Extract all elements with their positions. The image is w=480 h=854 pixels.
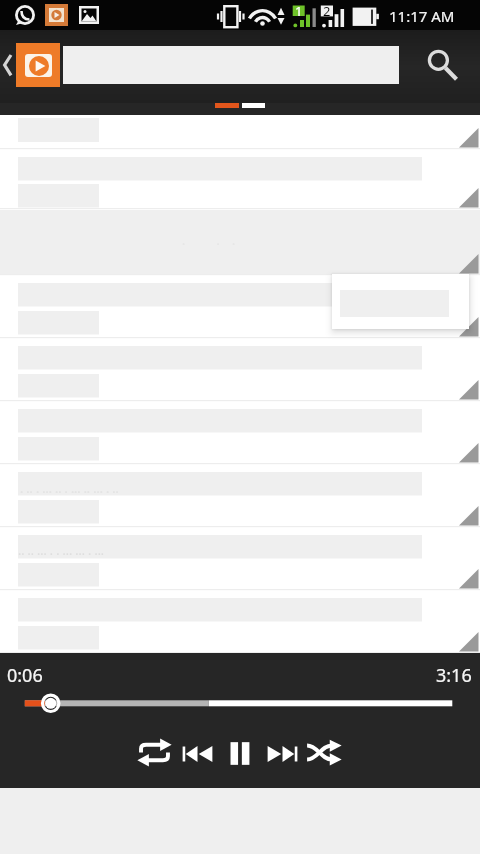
staticText: · ·· · ··· ·· · ··· ·· ··· · ·· [20, 484, 119, 500]
button[interactable] [0, 464, 480, 527]
button[interactable]: Pause [221, 734, 260, 773]
staticText: 1 [295, 2, 303, 20]
button[interactable]: App icon [16, 43, 60, 87]
button[interactable]: Popup [332, 274, 469, 329]
staticText: ·· ·· ··· · · ··· ··· · ··· [18, 546, 105, 562]
button[interactable] [0, 590, 480, 653]
button[interactable] [0, 209, 480, 275]
staticText: 2 [323, 2, 331, 20]
button[interactable] [0, 149, 480, 209]
button[interactable]: Shuffle [300, 732, 348, 773]
button[interactable] [0, 338, 480, 401]
button[interactable] [0, 275, 480, 338]
staticText: 0:06 [7, 663, 43, 688]
staticText: 3:16 [436, 663, 472, 688]
button[interactable]: Back [0, 40, 16, 86]
button[interactable] [0, 527, 480, 590]
button[interactable] [0, 401, 480, 464]
button[interactable]: Previous [176, 737, 219, 771]
button[interactable]: Repeat [131, 732, 178, 773]
button[interactable] [0, 115, 480, 149]
staticText: 11:17 AM [389, 6, 455, 26]
button[interactable]: Next [261, 737, 304, 771]
button[interactable]: Search [414, 41, 466, 89]
